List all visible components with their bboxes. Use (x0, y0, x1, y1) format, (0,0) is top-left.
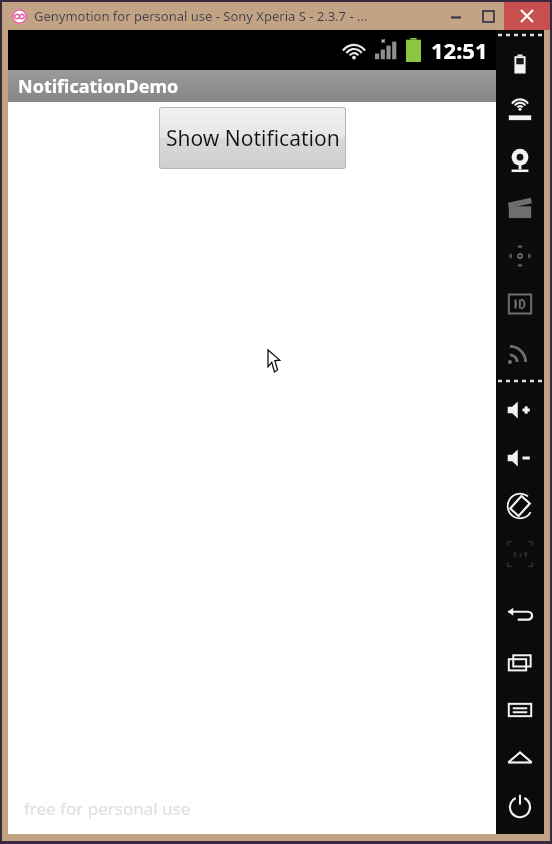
button[interactable]: Video (496, 184, 544, 232)
staticText: 12:51 (431, 35, 488, 65)
button[interactable]: Close (504, 2, 550, 30)
staticText: NotificationDemo (18, 74, 179, 99)
button[interactable]: Identifiers (496, 280, 544, 328)
staticText: Genymotion for personal use - Sony Xperi… (34, 7, 368, 25)
button[interactable]: Volume down (496, 434, 544, 482)
button[interactable]: Battery (496, 40, 544, 88)
button[interactable]: Scale 1 to 1 (496, 530, 544, 578)
button[interactable]: Camera (496, 136, 544, 184)
button[interactable]: Recents (496, 638, 544, 686)
button[interactable]: Volume up (496, 386, 544, 434)
button[interactable]: Maximize (472, 2, 504, 30)
button[interactable]: D-pad (496, 232, 544, 280)
button[interactable]: Home (496, 734, 544, 782)
button[interactable]: Back (496, 590, 544, 638)
button[interactable]: Power (496, 782, 544, 830)
button[interactable]: GPS (496, 88, 544, 136)
button[interactable]: Rotate (496, 482, 544, 530)
staticText: free for personal use (24, 797, 191, 820)
staticText: Show Notification (166, 124, 340, 153)
button[interactable]: Menu (496, 686, 544, 734)
button[interactable]: Minimize (440, 2, 472, 30)
button[interactable]: Network (496, 328, 544, 376)
button[interactable]: Show Notification (160, 108, 345, 168)
